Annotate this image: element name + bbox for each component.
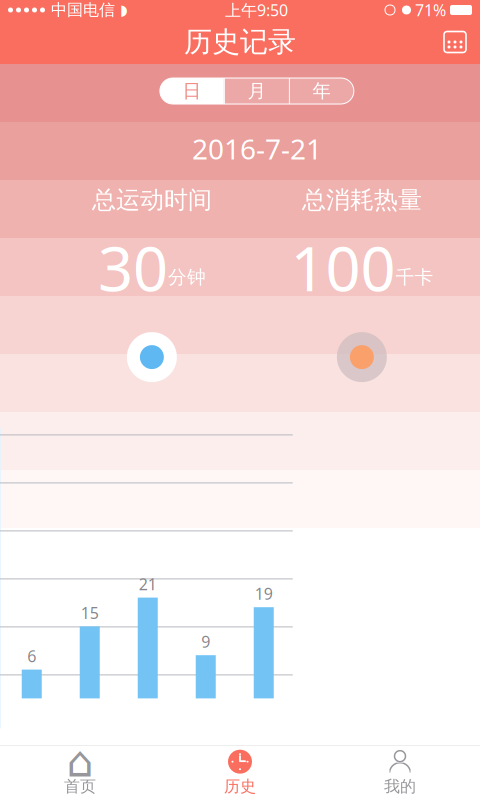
staticText: 年 — [312, 79, 331, 102]
staticText: 日 — [182, 79, 201, 102]
button[interactable]: 月 — [225, 78, 289, 104]
staticText: ⌂ — [66, 737, 93, 786]
staticText: 上午9:50 — [225, 0, 288, 21]
button[interactable]: 日 — [160, 78, 224, 104]
button[interactable]: 日历 — [430, 21, 480, 63]
button[interactable]: ⌂ — [0, 746, 160, 800]
staticText: 21 — [139, 573, 157, 595]
staticText: 15 — [81, 602, 99, 623]
staticText: 19 — [255, 583, 273, 604]
staticText: 千卡 — [395, 266, 433, 289]
staticText: 分钟 — [168, 266, 206, 289]
staticText: 总运动时间 — [92, 185, 212, 215]
button[interactable]: 历史 — [160, 746, 320, 800]
staticText: 71% — [415, 0, 446, 21]
staticText: 首页 — [64, 777, 96, 796]
button[interactable]: 年 — [290, 78, 354, 104]
staticText: 2016-7-21 — [192, 130, 322, 167]
staticText: 历史 — [224, 777, 256, 796]
staticText: 6 — [27, 645, 36, 667]
button[interactable]: 我的 — [320, 746, 480, 800]
staticText: 我的 — [384, 777, 416, 796]
staticText: 30 — [98, 227, 168, 308]
staticText: 9 — [201, 631, 210, 652]
staticText: ◗ — [120, 2, 128, 18]
staticText: 月 — [247, 79, 266, 102]
staticText: 100 — [290, 227, 395, 308]
staticText: 中国电信 — [51, 0, 115, 20]
staticText: 总消耗热量 — [302, 185, 422, 215]
staticText: 历史记录 — [184, 25, 296, 59]
